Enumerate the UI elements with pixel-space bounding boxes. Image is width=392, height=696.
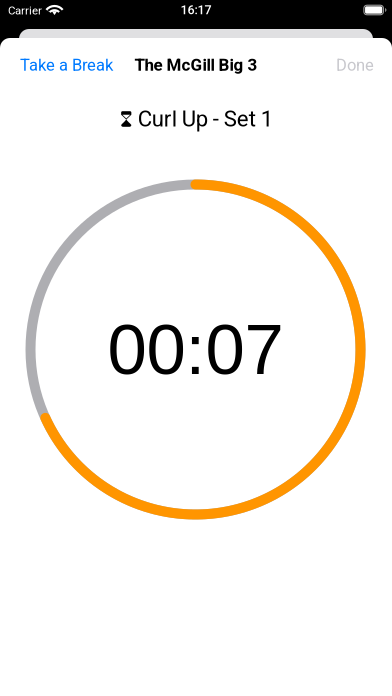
staticText: Take a Break xyxy=(20,55,113,75)
staticText: 00:07 xyxy=(107,310,283,389)
staticText: 16:17 xyxy=(180,3,211,17)
button[interactable]: Take a Break xyxy=(20,43,160,87)
staticText: Curl Up - Set 1 xyxy=(138,106,273,132)
staticText: The McGill Big 3 xyxy=(134,55,257,75)
button[interactable]: Done xyxy=(294,43,374,87)
staticText: Done xyxy=(336,55,374,75)
staticText: Carrier xyxy=(8,4,42,17)
